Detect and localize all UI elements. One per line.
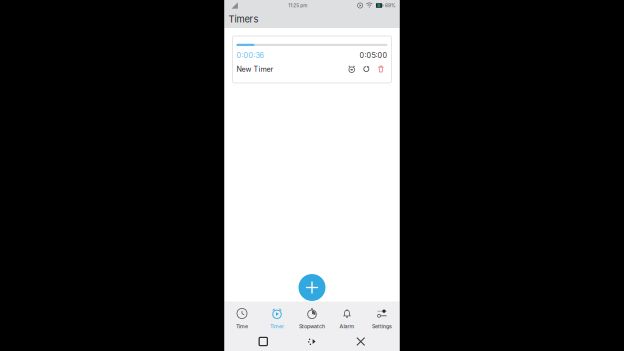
button[interactable]: Timer [259,301,294,332]
button[interactable]: Home [302,332,322,351]
staticText: 0:05:00 [359,51,387,60]
staticText: Timers [228,13,258,25]
staticText: Alarm [339,323,354,330]
staticText: 11:25 pm [288,3,307,8]
button[interactable]: Delete timer [376,63,386,74]
button[interactable]: Stopwatch [294,301,329,332]
staticText: Stopwatch [299,323,325,330]
button[interactable]: Settings [364,301,399,332]
button[interactable]: Add timer [298,274,325,301]
staticText: Time [236,323,248,330]
button[interactable]: Back [351,332,371,351]
staticText: Settings [372,323,392,330]
staticText: Timer [270,323,284,330]
button[interactable]: Recent apps [253,332,273,351]
button[interactable]: Alarm [329,301,364,332]
button[interactable]: Time [224,301,259,332]
staticText: 69% [385,3,396,8]
button[interactable]: Pause timer [347,63,357,74]
staticText: New Timer [236,65,273,73]
button[interactable]: Reset timer [361,63,371,74]
staticText: 0:00:36 [236,51,263,60]
